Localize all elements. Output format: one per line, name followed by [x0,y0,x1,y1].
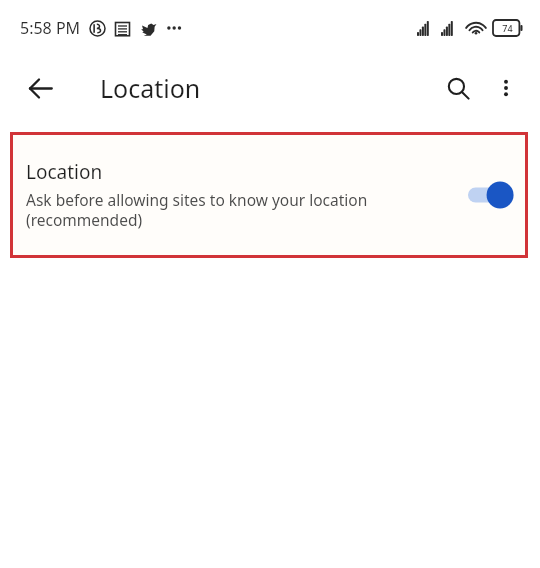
staticText: 74 [502,22,513,34]
button[interactable]: Back [16,64,64,112]
button[interactable]: More options [482,64,530,112]
button[interactable]: Location [10,132,528,258]
staticText: 5:58 PM [20,17,81,39]
staticText: Location [100,71,201,105]
button[interactable]: Location toggle, on [468,180,514,210]
staticText: Ask before allowing sites to know your l… [26,189,458,231]
button[interactable]: Search [434,64,482,112]
staticText: Location [26,159,103,185]
